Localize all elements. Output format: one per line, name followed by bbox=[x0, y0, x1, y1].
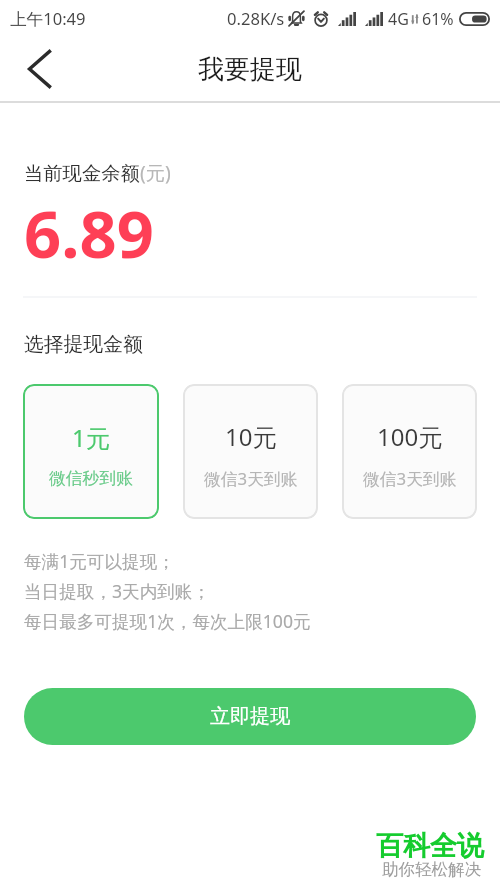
staticText: 助你轻松解决 bbox=[382, 859, 481, 880]
staticText: 100元 bbox=[377, 420, 443, 453]
staticText: 我要提现 bbox=[198, 53, 302, 86]
staticText: 当前现金余额 bbox=[24, 161, 140, 185]
staticText: 微信3天到账 bbox=[204, 467, 298, 490]
staticText: 1元 bbox=[72, 421, 110, 454]
staticText: 每日最多可提现1次，每次上限100元 bbox=[24, 609, 311, 633]
staticText: 微信秒到账 bbox=[49, 468, 133, 489]
button[interactable]: 100元 bbox=[342, 384, 477, 519]
staticText: 百科全说 bbox=[376, 829, 484, 863]
staticText: 0.28K/s bbox=[227, 7, 285, 30]
staticText: 选择提现金额 bbox=[24, 332, 143, 357]
staticText: 当日提取，3天内到账； bbox=[24, 579, 211, 603]
button[interactable]: 立即提现 bbox=[24, 688, 476, 745]
staticText: 10元 bbox=[225, 420, 277, 453]
button[interactable]: 10元 bbox=[183, 384, 318, 519]
staticText: (元) bbox=[140, 159, 171, 185]
staticText: 微信3天到账 bbox=[363, 467, 457, 490]
staticText: 每满1元可以提现； bbox=[24, 549, 175, 573]
staticText: 6.89 bbox=[24, 189, 154, 278]
button[interactable]: 1元 bbox=[23, 384, 159, 519]
staticText: 上午10:49 bbox=[10, 7, 86, 30]
staticText: 4G bbox=[388, 8, 409, 30]
button[interactable]: Back bbox=[6, 37, 72, 103]
staticText: 61% bbox=[422, 8, 454, 30]
staticText: 立即提现 bbox=[210, 704, 290, 729]
